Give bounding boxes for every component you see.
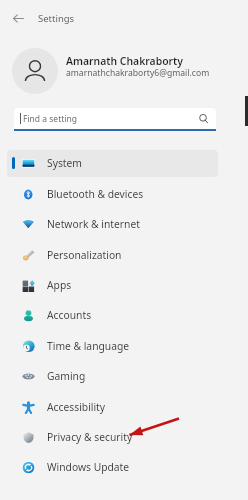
button[interactable]: Accounts bbox=[0, 300, 248, 330]
button[interactable]: Amarnath Chakraborty bbox=[0, 44, 248, 96]
button[interactable]: Privacy & security bbox=[0, 422, 248, 452]
button[interactable]: Gaming bbox=[0, 361, 248, 391]
button[interactable]: Network & internet bbox=[0, 209, 248, 239]
staticText: Find a setting bbox=[23, 113, 77, 125]
staticText: Privacy & security bbox=[47, 430, 133, 444]
button[interactable]: Windows Update bbox=[0, 452, 248, 482]
button[interactable]: Bluetooth & devices bbox=[0, 179, 248, 209]
button[interactable]: Personalization bbox=[0, 240, 248, 270]
button[interactable]: Back bbox=[7, 7, 30, 30]
staticText: Network & internet bbox=[47, 217, 141, 231]
button[interactable]: Find a setting bbox=[14, 108, 216, 129]
staticText: Accounts bbox=[47, 308, 92, 322]
button[interactable]: Accessibility bbox=[0, 392, 248, 422]
staticText: Time & language bbox=[47, 339, 130, 353]
staticText: Settings bbox=[38, 12, 75, 25]
staticText: amarnathchakraborty6@gmail.com bbox=[66, 67, 210, 79]
button[interactable]: Apps bbox=[0, 270, 248, 300]
staticText: Amarnath Chakraborty bbox=[66, 54, 183, 68]
button[interactable]: Time & language bbox=[0, 331, 248, 361]
staticText: Gaming bbox=[47, 369, 86, 383]
staticText: Apps bbox=[47, 278, 72, 292]
staticText: System bbox=[47, 156, 82, 170]
staticText: Accessibility bbox=[47, 400, 106, 414]
staticText: Windows Update bbox=[47, 460, 130, 474]
staticText: Personalization bbox=[47, 248, 122, 262]
button[interactable]: System bbox=[0, 148, 248, 178]
staticText: Bluetooth & devices bbox=[47, 187, 144, 201]
